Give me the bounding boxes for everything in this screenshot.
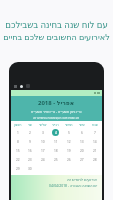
staticText: 13 (80, 140, 84, 144)
button[interactable]: 21 (88, 146, 101, 155)
staticText: אפריל - 2018 (38, 99, 75, 107)
staticText: 10 (41, 140, 45, 144)
staticText: 25 (54, 158, 58, 162)
button[interactable]: 14 (88, 137, 101, 146)
button[interactable]: 30 (24, 164, 36, 173)
button[interactable]: 9 (24, 137, 36, 146)
button[interactable]: 28 (88, 155, 101, 164)
button[interactable]: 10 (36, 137, 49, 146)
staticText: 4 (55, 131, 57, 135)
staticText: 14 (93, 140, 97, 144)
button[interactable]: 11 (49, 137, 62, 146)
button[interactable]: 25 (49, 155, 62, 164)
button[interactable]: 5 (62, 128, 75, 137)
staticText: חמישי (65, 123, 73, 126)
staticText: 29 (16, 167, 20, 171)
staticText: 6 (81, 131, 83, 135)
staticText: 18 (54, 149, 58, 153)
staticText: 9 (29, 140, 31, 144)
staticText: 5 (68, 131, 70, 135)
staticText: 19 (67, 149, 71, 153)
staticText: 11 (54, 140, 58, 144)
staticText: אירועים לחודש זה (67, 177, 98, 182)
button[interactable]: 1 (12, 128, 24, 137)
staticText: שבת (92, 123, 98, 126)
staticText: 26 (67, 158, 71, 162)
staticText: 7 (94, 131, 96, 135)
button[interactable]: 15 (12, 146, 24, 155)
button[interactable]: 2 (24, 128, 36, 137)
staticText: 24 (41, 158, 45, 162)
staticText: 8 (17, 140, 19, 144)
staticText: 04/04/2018 - יום השואה והגבורה (49, 183, 98, 188)
staticText: 16 (28, 149, 32, 153)
staticText: 21 (93, 149, 97, 153)
button[interactable]: 26 (62, 155, 75, 164)
staticText: 30 (28, 167, 32, 171)
button[interactable]: 22 (12, 155, 24, 164)
button[interactable]: 23 (24, 155, 36, 164)
staticText: 17 (41, 149, 45, 153)
button[interactable]: 13 (75, 137, 88, 146)
button[interactable]: 24 (36, 155, 49, 164)
button[interactable]: 19 (62, 146, 75, 155)
button[interactable]: 20 (75, 146, 88, 155)
staticText: 20 (80, 149, 84, 153)
staticText: שלישי (39, 123, 47, 126)
staticText: לאירועים החשובים שלכם בחיים (3, 31, 110, 42)
button[interactable]: 27 (75, 155, 88, 164)
staticText: ראשון (14, 123, 22, 126)
staticText: 3 (42, 131, 44, 135)
button[interactable]: 29 (12, 164, 24, 173)
button[interactable]: 7 (88, 128, 101, 137)
staticText: 23 (28, 158, 32, 162)
button[interactable]: 8 (12, 137, 24, 146)
staticText: 2 (29, 131, 31, 135)
staticText: חג פסח ויום העצמאות בחודש זה (33, 115, 80, 120)
staticText: שישי (79, 123, 85, 126)
button[interactable]: 3 (36, 128, 49, 137)
staticText: 28 (93, 158, 97, 162)
staticText: שני (28, 123, 32, 126)
button[interactable]: 4 (49, 128, 62, 137)
staticText: 15 (16, 149, 20, 153)
button[interactable]: 6 (75, 128, 88, 137)
staticText: עם לוח שנה בחינה בשבילכם (5, 19, 108, 31)
staticText: 27 (80, 158, 84, 162)
staticText: 1 (17, 131, 19, 135)
button[interactable]: 17 (36, 146, 49, 155)
staticText: 12 (67, 140, 71, 144)
staticText: ט״ו ניסן תשע״ח - ט״ז אייר תשע״ח (31, 109, 82, 114)
button[interactable]: 16 (24, 146, 36, 155)
button[interactable]: 18 (49, 146, 62, 155)
staticText: רביעי (52, 123, 59, 126)
button[interactable]: 12 (62, 137, 75, 146)
staticText: 22 (16, 158, 20, 162)
